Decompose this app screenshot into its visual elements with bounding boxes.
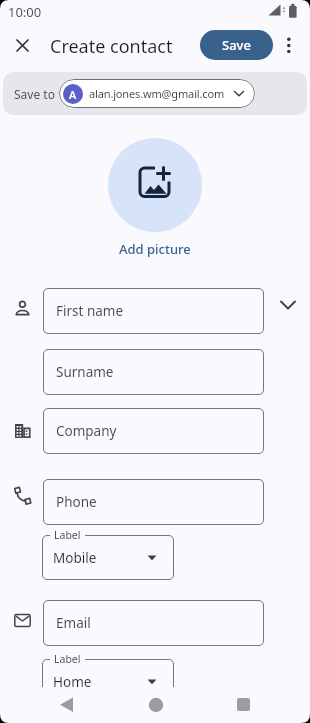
button[interactable] [108, 138, 202, 232]
staticText: First name [56, 302, 124, 320]
button[interactable]: Company [43, 408, 264, 454]
staticText: Mobile [53, 549, 97, 567]
button[interactable]: First name [43, 288, 264, 334]
staticText: 10:00 [8, 3, 42, 21]
staticText: Add picture [119, 240, 191, 258]
staticText: Save [222, 36, 251, 54]
button[interactable]: Mobile [42, 535, 174, 580]
staticText: alan.jones.wm@gmail.com [89, 86, 225, 101]
button[interactable] [276, 293, 300, 317]
staticText: Label [54, 528, 81, 542]
staticText: Phone [56, 493, 97, 511]
staticText: Email [56, 614, 91, 632]
button[interactable] [279, 31, 299, 59]
button[interactable]: A [59, 79, 255, 108]
staticText: Label [54, 652, 81, 666]
button[interactable]: Email [43, 600, 264, 646]
button[interactable] [142, 691, 170, 719]
staticText: A [69, 87, 77, 102]
staticText: Home [53, 673, 92, 691]
staticText: Company [56, 422, 117, 440]
button[interactable] [8, 31, 37, 60]
staticText: Save to [14, 86, 55, 102]
button[interactable]: Home [42, 659, 174, 704]
button[interactable]: Add picture [119, 240, 191, 258]
button[interactable]: Surname [43, 349, 264, 395]
button[interactable]: Save [200, 30, 273, 60]
staticText: Surname [56, 363, 114, 381]
staticText: Create contact [50, 34, 173, 59]
button[interactable] [53, 691, 81, 719]
button[interactable]: Phone [43, 479, 264, 525]
button[interactable] [230, 691, 258, 719]
